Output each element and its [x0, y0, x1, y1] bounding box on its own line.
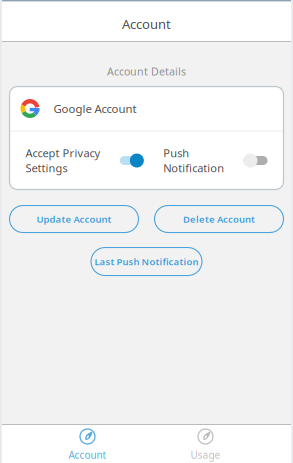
- staticText: Accept Privacy Settings: [25, 145, 100, 176]
- staticText: Google Account: [53, 101, 136, 116]
- staticText: Update Account: [36, 213, 111, 225]
- button[interactable]: Update Account: [9, 205, 138, 232]
- staticText: Push Notification: [163, 145, 224, 176]
- button[interactable]: Delete Account: [154, 205, 283, 232]
- staticText: Usage: [190, 448, 220, 462]
- staticText: Account Details: [107, 64, 186, 78]
- staticText: Last Push Notification: [94, 255, 198, 268]
- button[interactable]: Last Push Notification: [91, 247, 202, 275]
- staticText: Account: [122, 15, 171, 33]
- staticText: Delete Account: [183, 213, 255, 225]
- button[interactable]: Account: [28, 425, 146, 463]
- staticText: Account: [68, 448, 106, 462]
- button[interactable]: Usage: [146, 425, 264, 463]
